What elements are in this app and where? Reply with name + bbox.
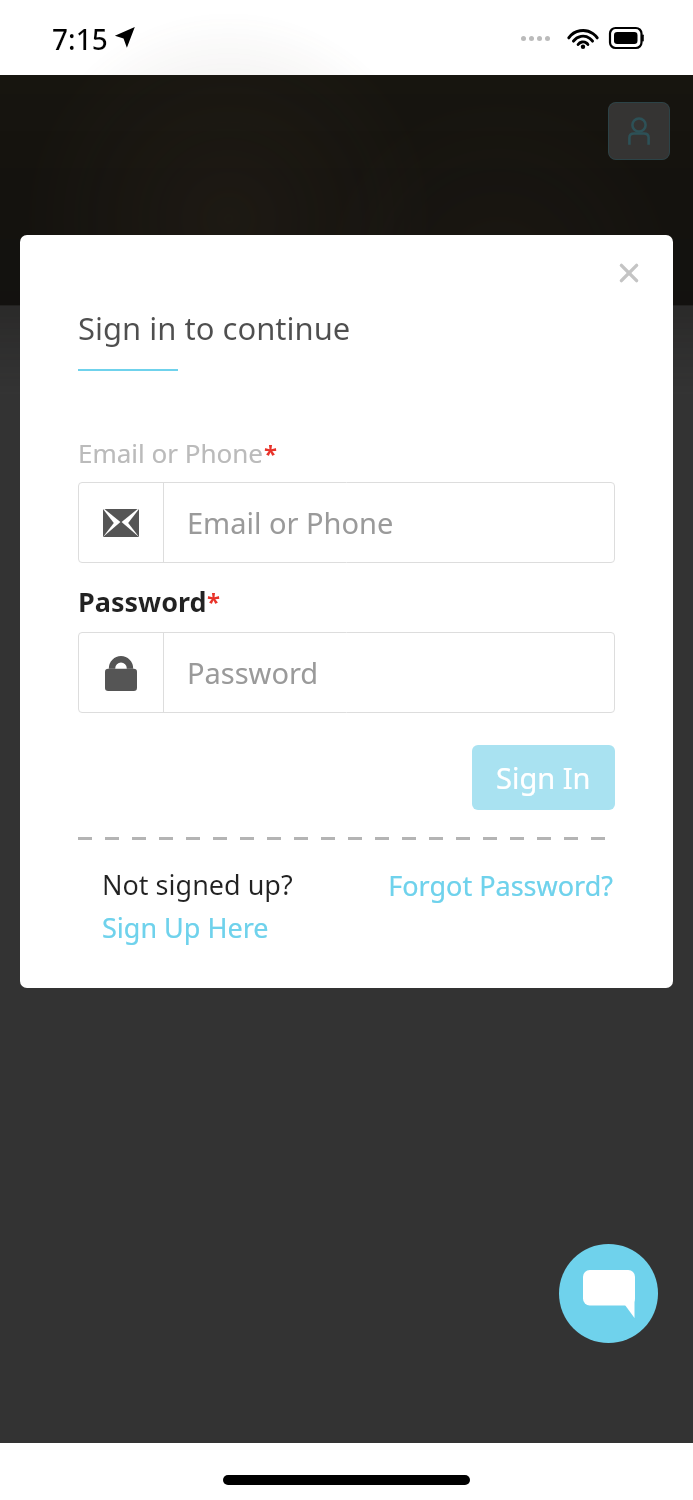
button[interactable]: Password <box>78 632 615 713</box>
staticText: Sign Up Here <box>102 909 269 946</box>
button[interactable]: Forgot Password? <box>388 867 613 904</box>
staticText: Not signed up? <box>102 866 293 903</box>
button[interactable]: Close <box>607 251 651 295</box>
button[interactable]: Profile <box>608 102 670 160</box>
staticText: Sign in to continue <box>78 307 351 349</box>
staticText: 7:15 <box>52 20 108 58</box>
staticText: Email or Phone <box>78 435 264 470</box>
staticText: Password <box>78 583 207 620</box>
button[interactable]: Email or Phone <box>78 482 615 563</box>
staticText: * <box>207 585 221 618</box>
staticText: Sign In <box>496 758 591 797</box>
staticText: Forgot Password? <box>388 867 613 904</box>
button[interactable]: Sign In <box>472 745 615 810</box>
staticText: * <box>264 437 278 470</box>
staticText: Email or Phone <box>187 503 394 542</box>
staticText: Password <box>187 653 319 692</box>
button[interactable]: Chat <box>559 1244 658 1343</box>
button[interactable]: Sign Up Here <box>102 909 269 946</box>
